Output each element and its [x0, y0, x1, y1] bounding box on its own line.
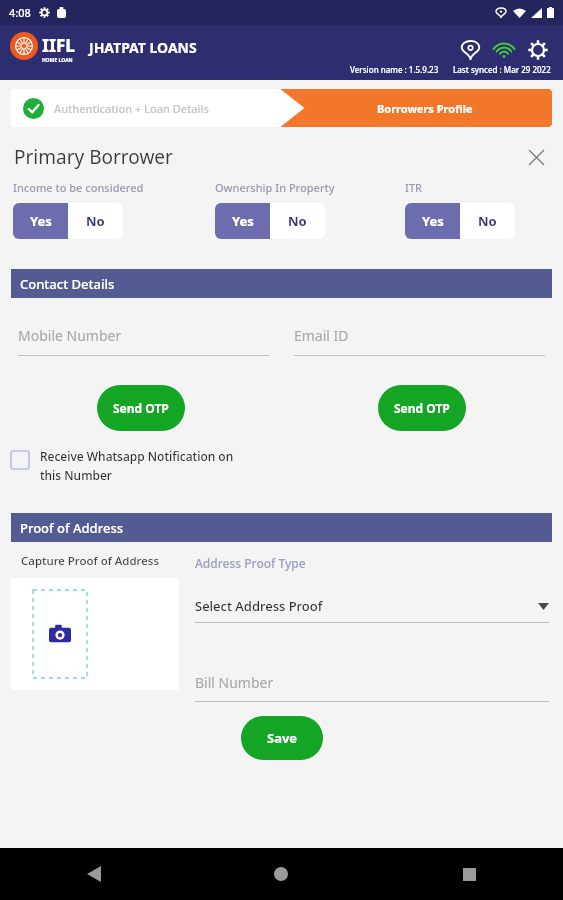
button[interactable]: Back	[0, 848, 187, 900]
button[interactable]: Home	[187, 848, 375, 900]
button[interactable]: Bill Number	[195, 673, 549, 702]
staticText: JHATPAT LOANS	[89, 38, 197, 57]
button[interactable]: Location	[455, 35, 485, 65]
staticText: IIFL	[42, 34, 75, 57]
staticText: Yes	[422, 212, 444, 230]
button[interactable]: Send OTP	[378, 385, 466, 431]
button[interactable]: Send OTP	[97, 385, 185, 431]
staticText: Proof of Address	[20, 519, 124, 537]
staticText: Last synced : Mar 29 2022	[453, 64, 551, 75]
button[interactable]: Yes	[13, 203, 68, 239]
staticText: Receive Whatsapp Notification on	[40, 448, 234, 464]
button[interactable]: Recent apps	[375, 848, 563, 900]
button[interactable]: Contact Details	[11, 269, 552, 298]
staticText: Borrowers Profile	[377, 101, 473, 116]
staticText: Send OTP	[113, 400, 169, 416]
staticText: Mobile Number	[18, 326, 122, 345]
button[interactable]: Settings	[523, 35, 553, 65]
button[interactable]: Save	[241, 716, 323, 760]
staticText: this Number	[40, 467, 112, 483]
staticText: Primary Borrower	[14, 144, 173, 170]
staticText: Yes	[232, 212, 254, 230]
staticText: No	[288, 212, 307, 230]
staticText: Bill Number	[195, 673, 274, 692]
button[interactable]: Email ID	[294, 326, 545, 356]
staticText: Version name : 1.5.9.23	[350, 64, 439, 75]
staticText: Address Proof Type	[195, 555, 306, 571]
button[interactable]: No	[460, 203, 515, 239]
button[interactable]: No	[68, 203, 123, 239]
staticText: Save	[267, 729, 298, 747]
button[interactable]: Select Address Proof	[195, 597, 549, 615]
staticText: Authentication + Loan Details	[54, 101, 209, 116]
button[interactable]: Borrowers Profile	[281, 89, 552, 127]
staticText: Send OTP	[394, 400, 450, 416]
button[interactable]: Connection status	[489, 35, 519, 65]
button[interactable]: Proof of Address	[11, 513, 552, 542]
staticText: Ownership In Property	[215, 180, 335, 195]
staticText: Capture Proof of Address	[21, 553, 159, 569]
button[interactable]: No	[270, 203, 325, 239]
staticText: Yes	[30, 212, 52, 230]
staticText: No	[86, 212, 105, 230]
button[interactable]: Authentication + Loan Details	[11, 89, 280, 127]
button[interactable]: Mobile Number	[18, 326, 269, 356]
staticText: Contact Details	[20, 275, 115, 293]
staticText: No	[478, 212, 497, 230]
button[interactable]: Capture photo	[11, 578, 179, 690]
staticText: Income to be considered	[13, 180, 144, 195]
button[interactable]: Close	[521, 142, 551, 172]
staticText: ITR	[405, 180, 423, 195]
staticText: Email ID	[294, 326, 349, 345]
button[interactable]: Receive Whatsapp Notification on	[11, 448, 551, 483]
button[interactable]: Yes	[405, 203, 460, 239]
button[interactable]: Yes	[215, 203, 270, 239]
staticText: Select Address Proof	[195, 597, 323, 615]
staticText: HOME LOAN	[42, 57, 73, 64]
staticText: 4:08	[9, 5, 31, 20]
